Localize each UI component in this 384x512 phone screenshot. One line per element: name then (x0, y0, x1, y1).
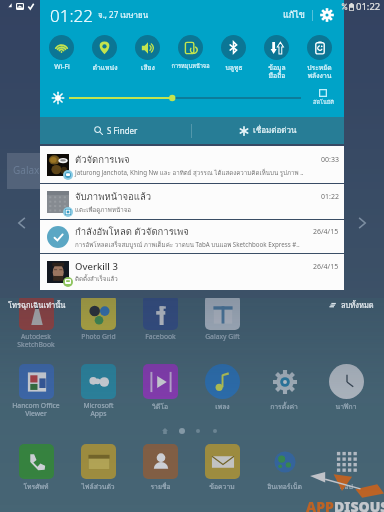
staticText: Autodesk SketchBook (17, 332, 55, 349)
staticText: Microsoft Apps (83, 401, 114, 418)
button[interactable]: วิดีโอ (129, 364, 191, 412)
button[interactable]: Photo Grid (67, 295, 129, 341)
staticText: รายชื่อ (150, 481, 171, 492)
button[interactable]: แก้ไข (280, 4, 308, 26)
button[interactable]: โทรฉุกเฉินเท่านั้น (8, 299, 66, 311)
staticText: แตะเพื่อดูภาพหน้าจอ (75, 205, 132, 215)
staticText: Facebook (145, 332, 176, 341)
button[interactable]: เชื่อมต่อด่วน (192, 117, 344, 144)
staticText: ติดตั้งสำเร็จแล้ว (75, 274, 118, 284)
staticText: ตัวจัดการเพจ (75, 152, 130, 167)
button[interactable]: นาฬิกา (315, 364, 377, 412)
button[interactable]: การหมุนหน้าจอ (169, 30, 212, 78)
staticText: อัตโนมัติ (313, 98, 334, 107)
button[interactable]: อินเทอร์เน็ต (253, 444, 315, 492)
button[interactable]: ข้อความ (191, 444, 253, 492)
staticText: Wi-Fi (54, 62, 70, 71)
staticText: APP (306, 497, 334, 512)
staticText: 01:22 (321, 192, 339, 202)
button[interactable]: ตำแหน่ง (83, 30, 126, 78)
staticText: 01:22 (50, 4, 93, 27)
button[interactable]: Galaxy Gift (191, 295, 253, 341)
staticText: ลบทั้งหมด (341, 299, 374, 311)
button[interactable]: Previous (14, 215, 30, 231)
button[interactable]: เพลง (191, 364, 253, 412)
button[interactable]: Overkill 3 (40, 254, 344, 290)
button[interactable]: S Finder (40, 117, 191, 144)
staticText: Galax (13, 163, 40, 177)
button[interactable]: บลูทูธ (212, 30, 255, 78)
button[interactable]: จับภาพหน้าจอแล้ว (40, 184, 344, 219)
staticText: Jaturong Janchota, Khing Nw และ อาทิตย์ … (75, 168, 304, 178)
staticText: ตำแหน่ง (92, 62, 118, 73)
staticText: นาฬิกา (335, 401, 357, 412)
staticText: การอัพโหลดเสร็จสมบูรณ์ ภาพเต็มค่ะ วาดบน … (75, 240, 300, 250)
staticText: 00:33 (321, 155, 339, 165)
staticText: Overkill 3 (75, 260, 118, 273)
staticText: โทรฉุกเฉินเท่านั้น (8, 299, 66, 311)
staticText: ไฟล์ส่วนตัว (81, 481, 115, 492)
button[interactable]: ลบทั้งหมด (329, 299, 374, 311)
button[interactable]: Facebook (129, 295, 191, 341)
staticText: การตั้งค่า (270, 401, 298, 412)
staticText: เชื่อมต่อด่วน (253, 124, 297, 137)
staticText: 01:22 (356, 0, 381, 13)
button[interactable]: Wi-Fi (40, 30, 83, 78)
staticText: โทรศัพท์ (23, 481, 49, 492)
staticText: S Finder (107, 125, 138, 136)
button[interactable]: Microsoft Apps (67, 364, 129, 418)
staticText: Hancom Office Viewer (12, 401, 60, 418)
button[interactable]: Hancom Office Viewer (5, 364, 67, 418)
staticText: ประหยัด พลังงาน (307, 62, 332, 78)
button[interactable]: Autodesk SketchBook (5, 295, 67, 349)
staticText: ข้อความ (209, 481, 235, 492)
staticText: Galaxy Gift (205, 332, 240, 341)
staticText: ข้อมูล มือถือ (268, 62, 286, 78)
staticText: จ., 27 เมษายน (98, 9, 149, 22)
staticText: การหมุนหน้าจอ (171, 62, 210, 71)
button[interactable]: ประหยัด พลังงาน (298, 30, 341, 78)
button[interactable]: แอป (315, 444, 377, 492)
staticText: อินเทอร์เน็ต (267, 481, 302, 492)
button[interactable]: Next (354, 215, 370, 231)
staticText: เสียง (141, 62, 155, 73)
staticText: Photo Grid (81, 332, 116, 341)
button[interactable]: ตัวจัดการเพจ (40, 146, 344, 183)
staticText: แอป (340, 481, 353, 492)
button[interactable]: กำลังอัพโหลด ตัวจัดการเพจ (40, 220, 344, 253)
staticText: เพลง (215, 401, 230, 412)
button[interactable]: รายชื่อ (129, 444, 191, 492)
button[interactable]: ไฟล์ส่วนตัว (67, 444, 129, 492)
staticText: วิดีโอ (152, 401, 168, 412)
staticText: กำลังอัพโหลด ตัวจัดการเพจ (75, 224, 189, 239)
staticText: 26/4/15 (313, 227, 339, 237)
button[interactable]: อัตโนมัติ (310, 89, 336, 107)
staticText: จับภาพหน้าจอแล้ว (75, 189, 152, 204)
staticText: แก้ไข (283, 8, 305, 22)
button[interactable]: การตั้งค่า (253, 364, 315, 412)
button[interactable]: ข้อมูล มือถือ (255, 30, 298, 78)
button[interactable]: Settings (318, 6, 336, 24)
staticText: 26/4/15 (313, 262, 339, 272)
button[interactable]: เสียง (126, 30, 169, 78)
staticText: บลูทูธ (225, 62, 243, 73)
staticText: DISQUS (334, 497, 384, 512)
button[interactable]: โทรศัพท์ (5, 444, 67, 492)
